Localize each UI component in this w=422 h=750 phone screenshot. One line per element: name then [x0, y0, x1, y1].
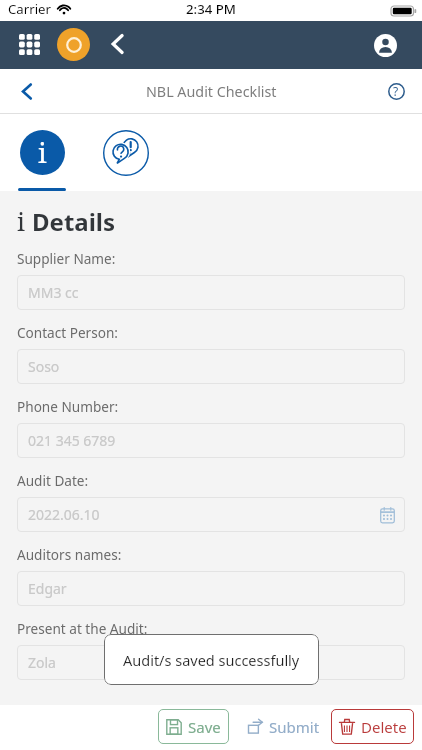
button[interactable]: Help	[380, 75, 412, 107]
staticText: Save	[188, 717, 221, 737]
staticText: i	[17, 204, 26, 238]
staticText: Supplier Name:	[17, 249, 116, 268]
staticText: Zola	[28, 653, 56, 672]
staticText: Edgar	[28, 579, 67, 598]
staticText: 2:34 PM	[186, 0, 236, 18]
button[interactable]: Home	[57, 28, 90, 61]
button[interactable]: 021 345 6789	[17, 423, 405, 458]
staticText: Submit	[269, 717, 320, 737]
staticText: Delete	[361, 717, 407, 737]
button[interactable]: Apps	[8, 21, 50, 69]
button[interactable]: Account	[363, 21, 407, 69]
staticText: Present at the Audit:	[17, 619, 148, 638]
button[interactable]: Questions tab	[84, 117, 168, 188]
button[interactable]: Delete	[331, 709, 414, 744]
button[interactable]: Zola	[17, 645, 405, 680]
staticText: 2022.06.10	[28, 505, 100, 524]
staticText: Phone Number:	[17, 397, 119, 416]
button[interactable]: Soso	[17, 349, 405, 384]
staticText: Contact Person:	[17, 323, 119, 342]
staticText: NBL Audit Checklist	[146, 82, 277, 101]
button[interactable]: Save	[158, 709, 229, 744]
staticText: Auditors names:	[17, 545, 122, 564]
button[interactable]: Edgar	[17, 571, 405, 606]
staticText: ?	[393, 83, 399, 99]
staticText: i	[38, 134, 47, 171]
button[interactable]: 2022.06.10	[17, 497, 405, 532]
button[interactable]: MM3 cc	[17, 275, 405, 310]
staticText: Audit/s saved successfully	[123, 650, 300, 670]
staticText: MM3 cc	[28, 283, 79, 302]
staticText: Carrier	[8, 0, 51, 18]
staticText: 021 345 6789	[28, 431, 116, 450]
staticText: Soso	[28, 357, 60, 376]
staticText: Audit Date:	[17, 471, 89, 490]
button[interactable]: Back	[102, 21, 132, 69]
button[interactable]: Back	[9, 73, 45, 109]
button[interactable]: Submit	[246, 709, 326, 744]
staticText: Details	[32, 205, 116, 238]
button[interactable]: Details tab	[0, 117, 84, 188]
